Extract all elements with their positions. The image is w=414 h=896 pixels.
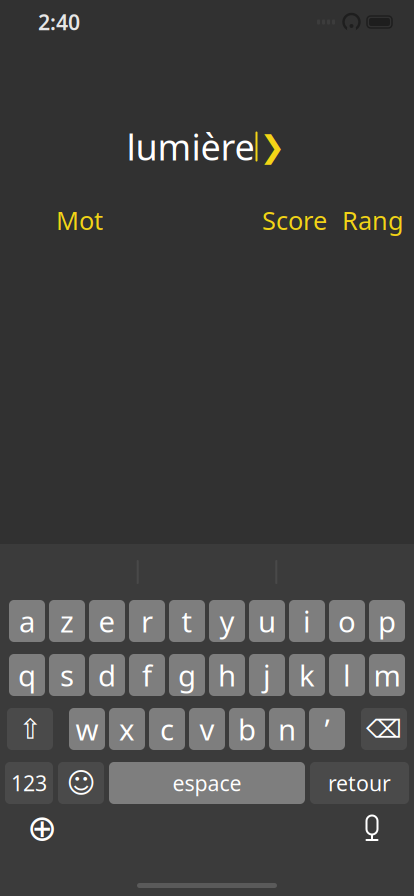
button[interactable]: r [129, 600, 165, 642]
staticText: j [263, 655, 271, 694]
button[interactable]: c [149, 708, 185, 750]
button[interactable]: e [89, 600, 125, 642]
staticText: h [218, 655, 236, 694]
button[interactable]: g [169, 654, 205, 696]
button[interactable]: Dictation [352, 808, 392, 848]
staticText: l [343, 655, 351, 694]
button[interactable]: o [329, 600, 365, 642]
button[interactable]: y [209, 600, 245, 642]
button[interactable]: a [9, 600, 45, 642]
button[interactable]: j [249, 654, 285, 696]
staticText: p [378, 601, 396, 640]
button[interactable]: ’ [309, 708, 345, 750]
staticText: ⊕ [27, 808, 57, 848]
staticText: g [178, 655, 196, 694]
button[interactable]: m [369, 654, 405, 696]
button[interactable]: Next keyboard [22, 808, 62, 848]
staticText: q [18, 655, 36, 694]
button[interactable]: s [49, 654, 85, 696]
staticText: espace [172, 769, 241, 797]
button[interactable]: f [129, 654, 165, 696]
button[interactable]: x [109, 708, 145, 750]
button[interactable]: n [269, 708, 305, 750]
staticText: y [219, 601, 234, 640]
staticText: s [60, 655, 74, 694]
button[interactable]: espace [109, 762, 305, 804]
staticText: k [299, 655, 315, 694]
button[interactable]: Emoji [58, 762, 104, 804]
staticText: lumière [126, 122, 254, 171]
button[interactable]: q [9, 654, 45, 696]
button[interactable]: u [249, 600, 285, 642]
staticText: e [98, 601, 115, 640]
button[interactable]: l [329, 654, 365, 696]
staticText: f [142, 655, 152, 694]
staticText: t [181, 601, 192, 640]
staticText: Score [262, 203, 327, 237]
button[interactable]: Delete [361, 708, 407, 750]
button[interactable]: d [89, 654, 125, 696]
button[interactable]: k [289, 654, 325, 696]
staticText: ☺ [66, 767, 95, 799]
staticText: c [160, 709, 174, 748]
button[interactable]: b [229, 708, 265, 750]
button[interactable]: v [189, 708, 225, 750]
button[interactable]: h [209, 654, 245, 696]
staticText: u [258, 601, 276, 640]
staticText: v [199, 709, 214, 748]
staticText: 2:40 [38, 8, 80, 36]
button[interactable]: p [369, 600, 405, 642]
button[interactable]: Shift [7, 708, 53, 750]
staticText: i [303, 601, 311, 640]
button[interactable]: retour [310, 762, 409, 804]
staticText: n [278, 709, 296, 748]
button[interactable]: i [289, 600, 325, 642]
staticText: retour [328, 769, 391, 797]
staticText: o [338, 601, 356, 640]
staticText: d [98, 655, 116, 694]
staticText: b [238, 709, 256, 748]
staticText: r [141, 601, 153, 640]
button[interactable]: z [49, 600, 85, 642]
staticText: Rang [342, 203, 404, 237]
button[interactable]: Submit word [257, 129, 287, 163]
button[interactable]: 123 [5, 762, 53, 804]
staticText: w [75, 709, 98, 748]
staticText: 123 [11, 769, 47, 797]
staticText: ❯ [259, 129, 285, 164]
staticText: a [19, 601, 35, 640]
staticText: ’ [324, 709, 329, 748]
staticText: x [119, 709, 135, 748]
button[interactable]: w [69, 708, 105, 750]
staticText: Mot [56, 203, 103, 237]
button[interactable]: t [169, 600, 205, 642]
staticText: ⌫ [366, 715, 402, 743]
staticText: ⇧ [18, 713, 41, 745]
staticText: z [60, 601, 74, 640]
staticText: m [373, 655, 400, 694]
